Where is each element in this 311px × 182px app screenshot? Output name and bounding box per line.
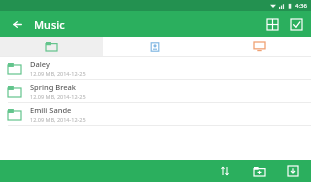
staticText: 12.09 MB, 2014-12-25: [30, 116, 86, 123]
staticText: Daley: [30, 59, 50, 69]
staticText: Emili Sande: [30, 105, 72, 115]
button[interactable]: Cloud: [103, 37, 207, 56]
button[interactable]: Download: [283, 161, 303, 181]
staticText: 4:36: [295, 2, 307, 10]
staticText: 12.09 MB, 2014-12-25: [30, 93, 86, 100]
button[interactable]: New folder: [249, 161, 269, 181]
staticText: Spring Break: [30, 82, 76, 92]
button[interactable]: Grid view: [259, 11, 285, 37]
button[interactable]: Back: [0, 11, 34, 37]
staticText: Music: [34, 17, 65, 32]
button[interactable]: Emili Sande: [0, 103, 311, 126]
staticText: 12.09 MB, 2014-12-25: [30, 70, 86, 77]
button[interactable]: Sort: [215, 161, 235, 181]
button[interactable]: Select all: [285, 11, 307, 37]
button[interactable]: Local files: [0, 37, 103, 56]
button[interactable]: Daley: [0, 57, 311, 80]
button[interactable]: Spring Break: [0, 80, 311, 103]
button[interactable]: Computer: [207, 37, 311, 56]
